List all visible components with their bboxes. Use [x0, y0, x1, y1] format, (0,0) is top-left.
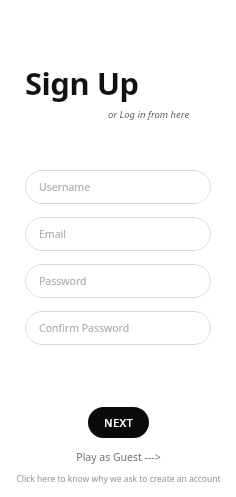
button[interactable]: Username [25, 170, 211, 204]
staticText: Username [39, 180, 91, 194]
button[interactable]: Email [25, 217, 211, 251]
button[interactable]: NEXT [88, 407, 149, 438]
button[interactable]: Confirm Password [25, 311, 211, 345]
button[interactable]: Click here to know why we ask to create … [16, 473, 221, 485]
button[interactable]: Play as Guest ---> [76, 450, 161, 464]
staticText: Password [39, 274, 87, 288]
staticText: NEXT [104, 415, 134, 430]
button[interactable]: Password [25, 264, 211, 298]
staticText: Email [39, 227, 66, 241]
staticText: Sign Up [25, 62, 139, 104]
staticText: Confirm Password [39, 321, 130, 335]
button[interactable]: or Log in from here [108, 108, 190, 121]
